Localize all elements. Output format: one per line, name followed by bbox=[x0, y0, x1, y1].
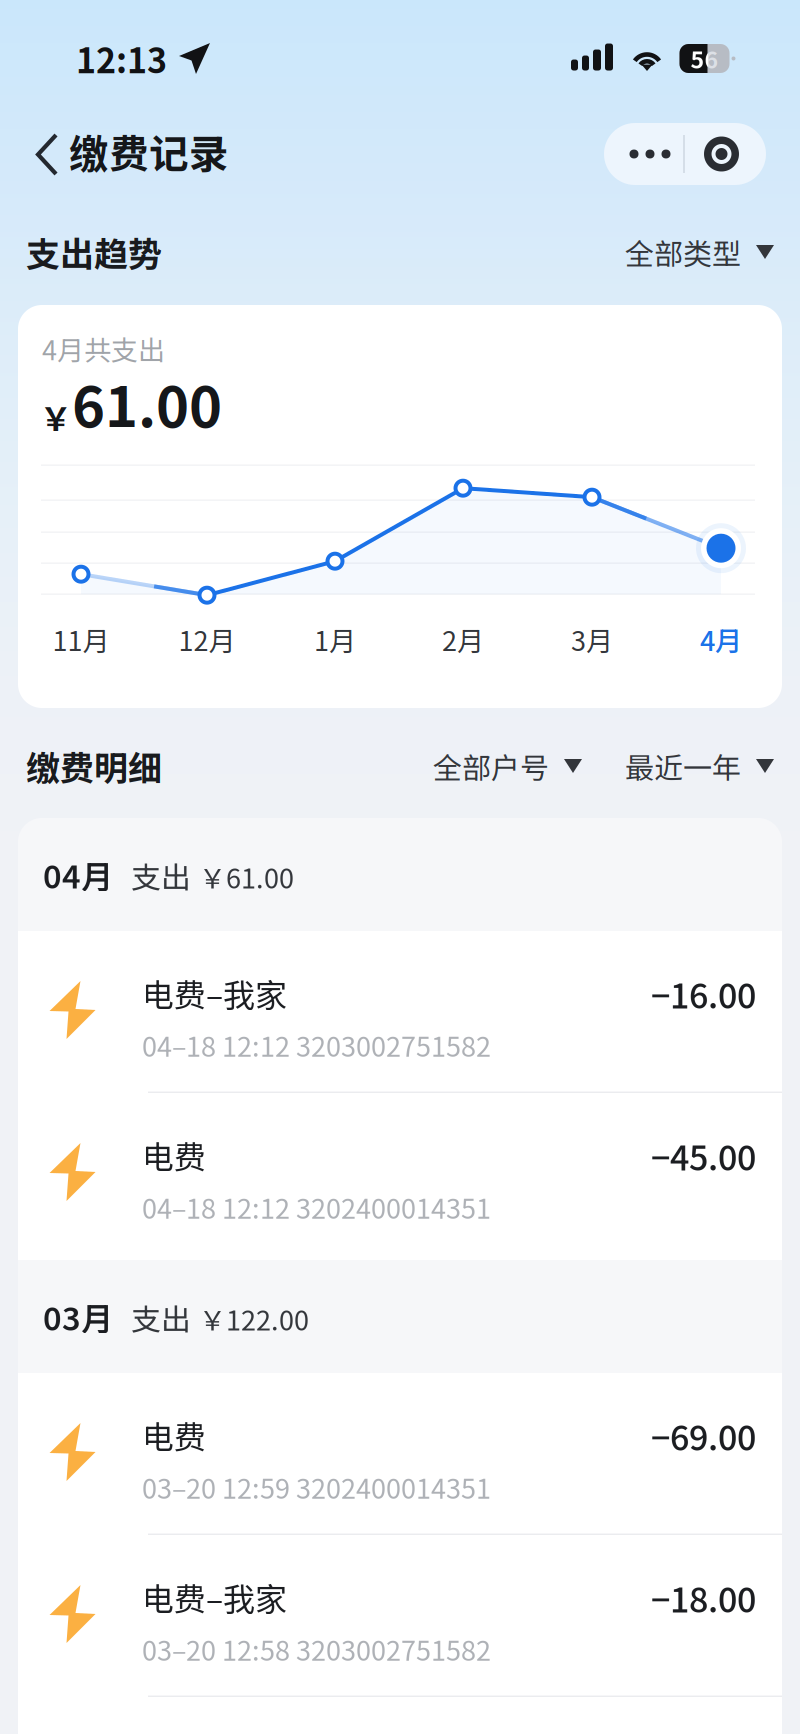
staticText: 04–18 12:12 3202400014351 bbox=[142, 1187, 491, 1226]
button[interactable]: 全部户号 bbox=[433, 745, 582, 787]
staticText: 3月 bbox=[571, 620, 613, 659]
staticText: ￥122.00 bbox=[199, 1299, 309, 1338]
staticText: 11月 bbox=[52, 620, 109, 659]
staticText: −18.00 bbox=[651, 1573, 756, 1622]
button[interactable]: 电费 bbox=[18, 1093, 782, 1260]
staticText: 全部户号 bbox=[433, 745, 549, 787]
staticText: −16.00 bbox=[651, 969, 756, 1018]
staticText: 电费–我家 bbox=[142, 1574, 287, 1620]
staticText: 03月 bbox=[43, 1293, 113, 1340]
staticText: 支出趋势 bbox=[26, 227, 162, 277]
button[interactable]: 电费–我家 bbox=[18, 1535, 782, 1697]
staticText: 缴费记录 bbox=[69, 122, 229, 180]
staticText: 04–18 12:12 3203002751582 bbox=[142, 1025, 491, 1064]
staticText: 电费–我家 bbox=[142, 970, 287, 1016]
button[interactable]: 电费 bbox=[18, 1373, 782, 1535]
button[interactable]: 电费–我家 bbox=[18, 931, 782, 1093]
staticText: −69.00 bbox=[651, 1411, 756, 1460]
button[interactable]: 全部类型 bbox=[625, 231, 774, 273]
button[interactable]: 返回 bbox=[0, 110, 69, 192]
staticText: 03–20 12:59 3202400014351 bbox=[142, 1467, 491, 1506]
staticText: 支出 bbox=[131, 854, 191, 897]
staticText: 03–20 12:58 3203002751582 bbox=[142, 1629, 491, 1668]
staticText: 1月 bbox=[314, 620, 356, 659]
staticText: 04月 bbox=[43, 851, 113, 898]
staticText: 4月 bbox=[700, 620, 742, 659]
staticText: −45.00 bbox=[651, 1131, 756, 1180]
staticText: 12:13 bbox=[76, 34, 167, 83]
staticText: ￥ bbox=[40, 394, 72, 440]
staticText: 支出 bbox=[131, 1296, 191, 1339]
button[interactable]: 更多 bbox=[604, 123, 696, 185]
staticText: 电费 bbox=[142, 1412, 206, 1458]
staticText: 最近一年 bbox=[625, 745, 741, 787]
button[interactable]: 最近一年 bbox=[625, 745, 774, 787]
staticText: ￥61.00 bbox=[199, 857, 294, 896]
button[interactable]: 关闭 bbox=[680, 123, 762, 185]
staticText: 缴费明细 bbox=[26, 741, 162, 791]
staticText: 56 bbox=[690, 42, 718, 75]
staticText: 4月共支出 bbox=[42, 329, 165, 368]
staticText: 61.00 bbox=[72, 362, 222, 443]
staticText: 12月 bbox=[178, 620, 235, 659]
staticText: 全部类型 bbox=[625, 231, 741, 273]
staticText: 2月 bbox=[442, 620, 484, 659]
staticText: 56 bbox=[690, 42, 718, 75]
staticText: 电费 bbox=[142, 1132, 206, 1178]
